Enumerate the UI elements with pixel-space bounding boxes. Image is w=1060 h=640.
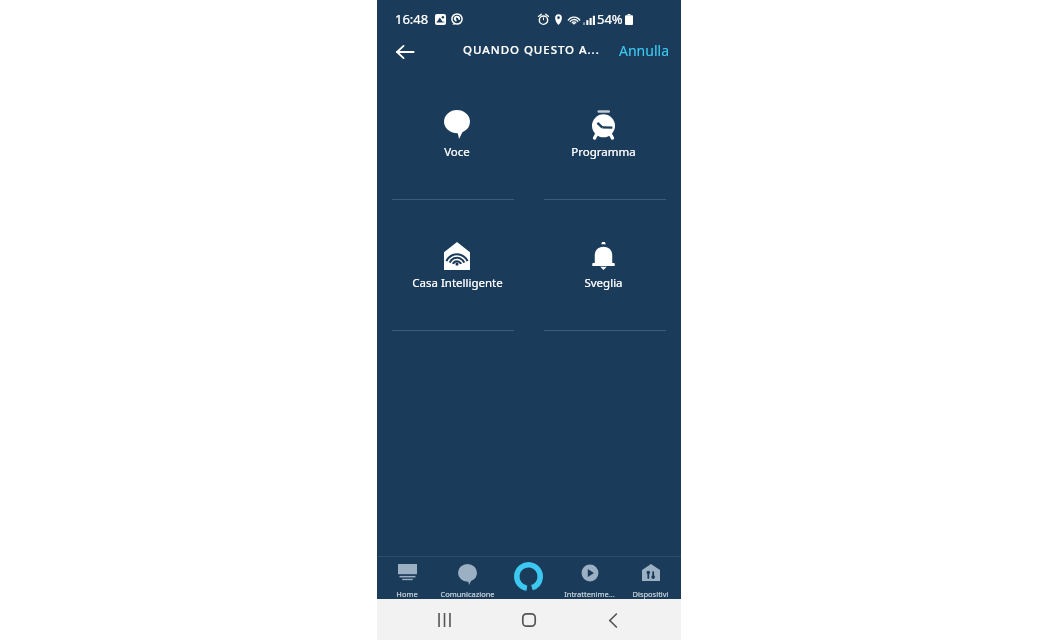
button[interactable]: Programma [529, 69, 681, 200]
button[interactable]: Casa Intelligente [377, 200, 529, 331]
staticText: 54% [597, 10, 623, 28]
button[interactable]: Sveglia [529, 200, 681, 331]
staticText: QUANDO QUESTO A... [463, 42, 600, 58]
staticText: Casa Intelligente [412, 275, 503, 291]
button[interactable]: Comunicazione [437, 557, 498, 599]
button[interactable]: Back [391, 38, 419, 66]
button[interactable]: Dispositivi [620, 557, 681, 599]
staticText: Sveglia [584, 275, 623, 291]
button[interactable]: Back [591, 604, 635, 636]
staticText: Voce [444, 144, 470, 160]
button[interactable]: Recents [422, 604, 466, 636]
staticText: 16:48 [395, 10, 429, 28]
button[interactable]: Home [507, 604, 551, 636]
staticText: Annulla [619, 41, 669, 60]
button[interactable]: Alexa [498, 557, 559, 599]
staticText: Dispositivi [632, 589, 669, 599]
staticText: Comunicazione [440, 589, 495, 599]
button[interactable]: Home [377, 557, 437, 599]
button[interactable]: Annulla [609, 37, 681, 68]
button[interactable]: Intrattenime... [559, 557, 620, 599]
staticText: Programma [571, 144, 636, 160]
button[interactable]: Voce [377, 69, 529, 200]
staticText: Intrattenime... [564, 589, 615, 599]
staticText: Home [396, 589, 418, 599]
